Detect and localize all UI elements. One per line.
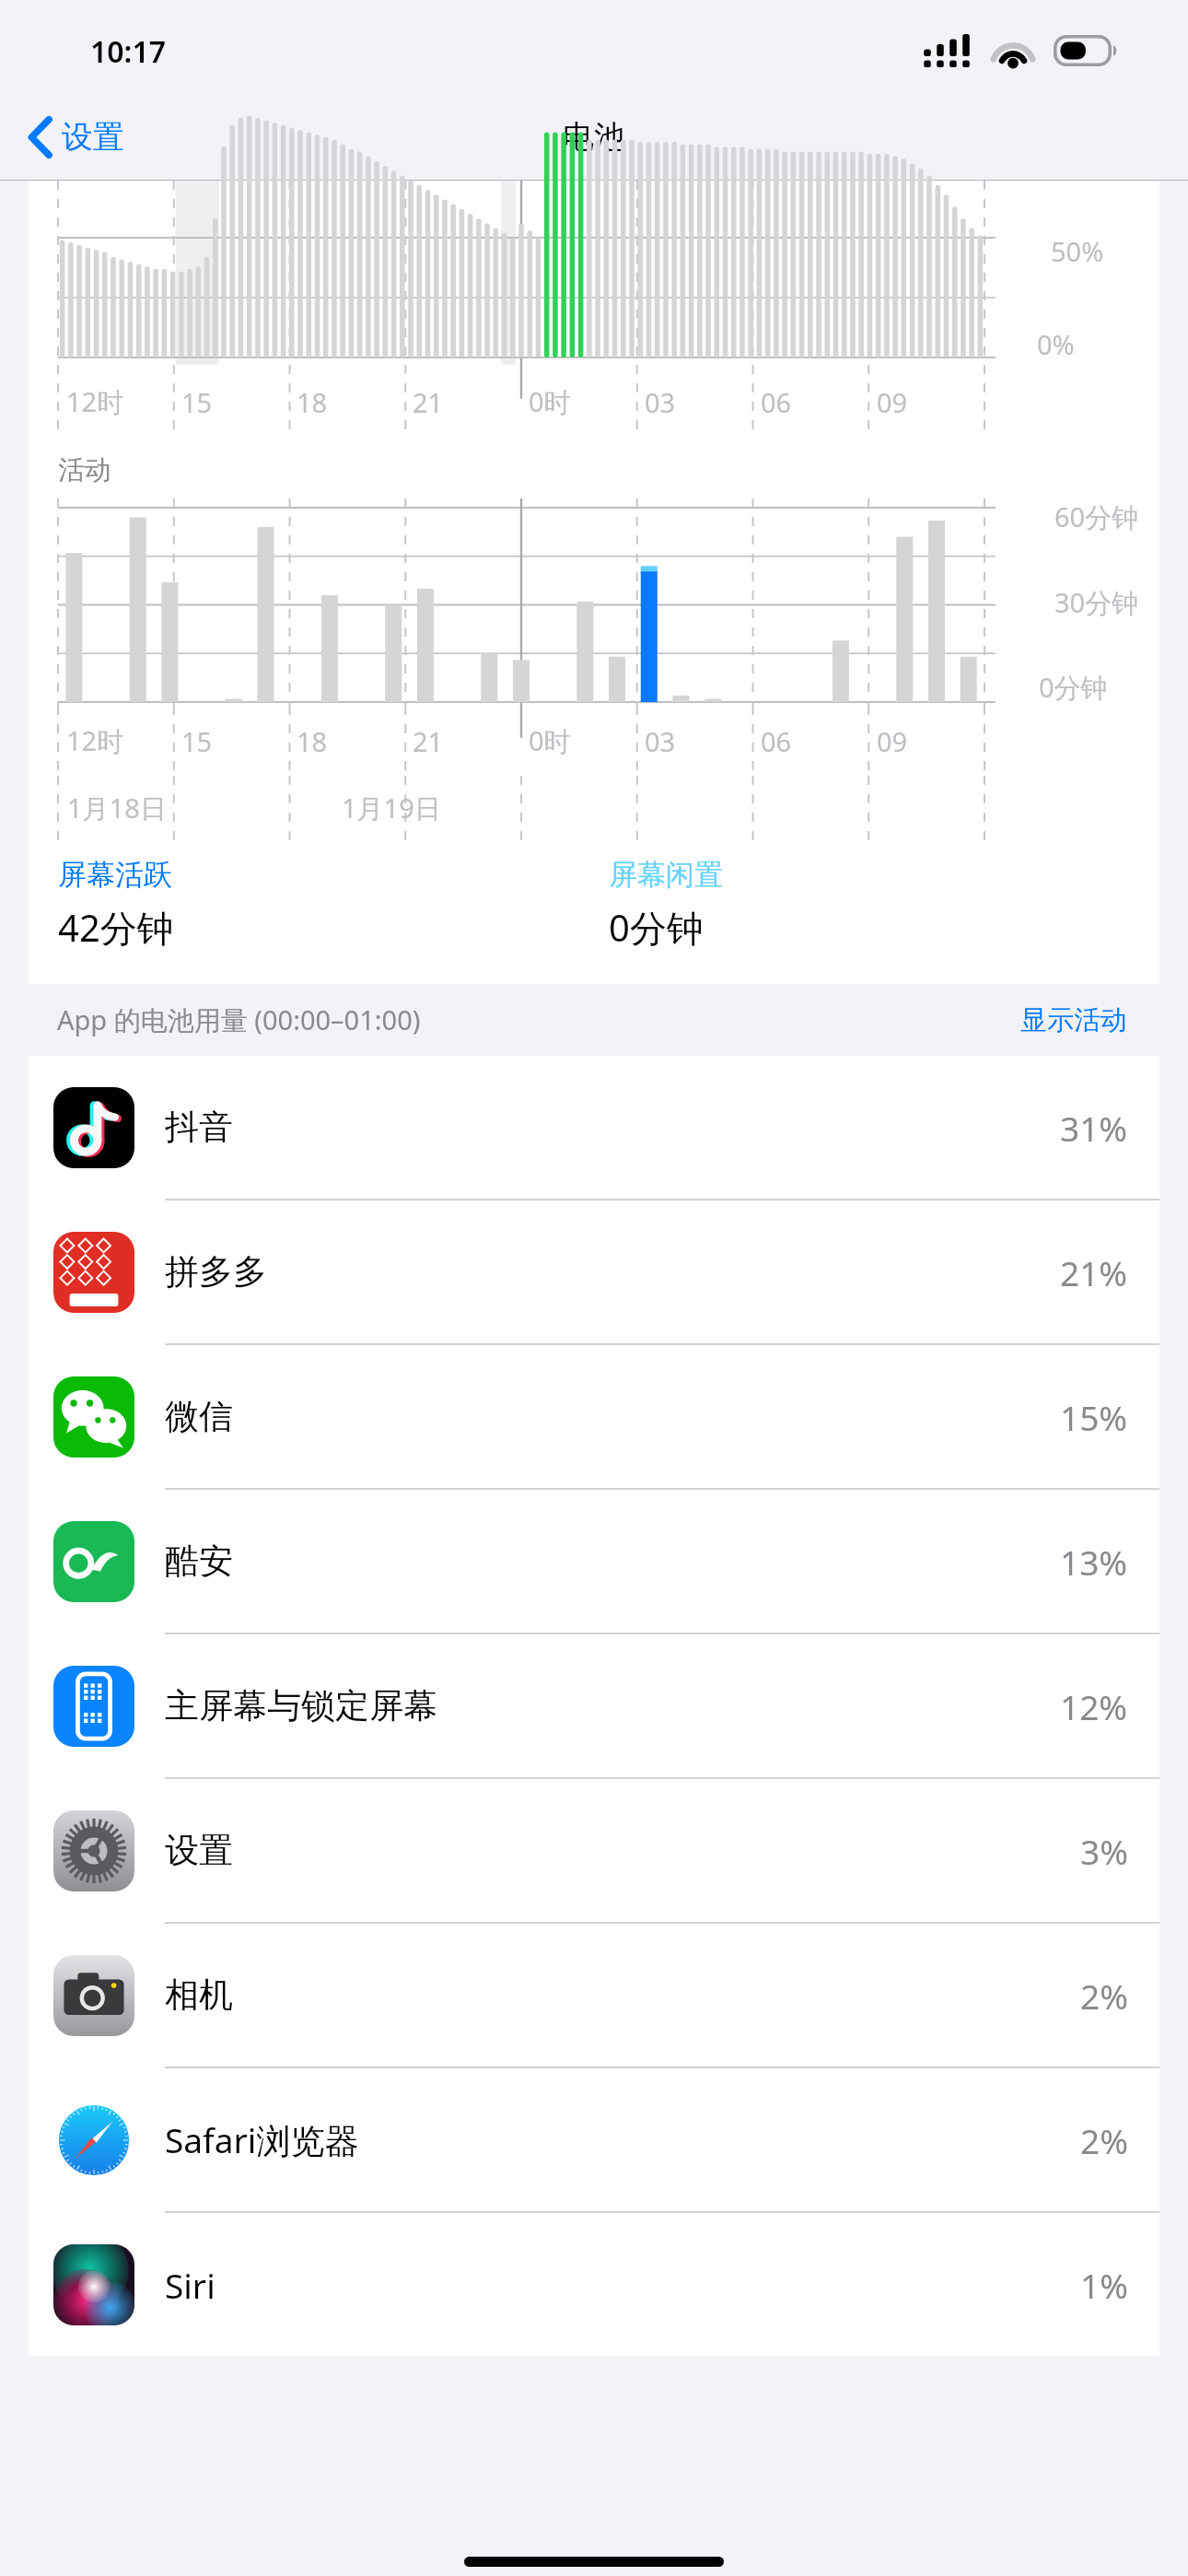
button[interactable]: 主屏幕与锁定屏幕 [29, 1634, 1159, 1779]
staticText: 15 [181, 384, 213, 420]
staticText: 06 [761, 384, 792, 420]
staticText: 显示活动 [1020, 1003, 1127, 1037]
staticText: 15% [1060, 1394, 1128, 1440]
button[interactable]: Safari浏览器 [29, 2068, 1159, 2213]
staticText: 活动 [58, 453, 111, 487]
staticText: 21% [1060, 1249, 1128, 1295]
staticText: 抖音 [165, 1106, 233, 1149]
staticText: 60分钟 [1054, 498, 1139, 535]
button[interactable]: 抖音 [29, 1056, 1159, 1200]
staticText: 屏幕闲置 [609, 857, 723, 893]
staticText: 03 [645, 384, 676, 420]
staticText: 30分钟 [1054, 584, 1139, 621]
staticText: 酷安 [165, 1540, 233, 1583]
staticText: 0时 [529, 383, 571, 420]
staticText: 18 [297, 384, 328, 420]
button[interactable]: 酷安 [29, 1490, 1159, 1634]
staticText: 1月18日 [67, 790, 167, 826]
staticText: 微信 [165, 1395, 233, 1438]
button[interactable]: 设置 [29, 1779, 1159, 1924]
staticText: 18 [297, 723, 328, 759]
staticText: 12% [1060, 1683, 1128, 1729]
staticText: Safari浏览器 [165, 2116, 359, 2163]
staticText: 0% [1037, 326, 1075, 362]
staticText: 09 [877, 384, 908, 420]
button[interactable]: Siri [29, 2213, 1159, 2356]
staticText: 12时 [66, 722, 124, 759]
staticText: 1月19日 [342, 790, 441, 826]
staticText: 1% [1080, 2262, 1128, 2308]
staticText: 50% [1051, 233, 1104, 269]
staticText: 3% [1080, 1828, 1128, 1874]
button[interactable]: 显示活动 [1017, 998, 1131, 1043]
staticText: 拼多多 [165, 1250, 267, 1294]
staticText: 03 [645, 723, 676, 759]
staticText: 21 [413, 384, 444, 420]
button[interactable]: 微信 [29, 1345, 1159, 1490]
staticText: 31% [1060, 1105, 1128, 1151]
staticText: App 的电池用量 (00:00–01:00) [57, 1001, 421, 1038]
staticText: 06 [761, 723, 792, 759]
button[interactable]: 设置 [22, 111, 132, 162]
staticText: 设置 [62, 117, 124, 157]
staticText: 设置 [165, 1829, 233, 1872]
staticText: 0分钟 [1039, 669, 1108, 706]
staticText: 13% [1060, 1539, 1128, 1585]
staticText: 2% [1080, 2117, 1128, 2163]
staticText: Siri [165, 2262, 215, 2308]
button[interactable]: 相机 [29, 1924, 1159, 2068]
staticText: 电池 [563, 117, 625, 157]
button[interactable]: 拼多多 [29, 1200, 1159, 1345]
staticText: 12时 [66, 383, 124, 420]
staticText: 42分钟 [58, 902, 174, 953]
staticText: 21 [413, 723, 444, 759]
staticText: 09 [877, 723, 908, 759]
staticText: 主屏幕与锁定屏幕 [165, 1684, 437, 1727]
staticText: 屏幕活跃 [58, 857, 172, 893]
staticText: 10:17 [90, 31, 167, 72]
staticText: 相机 [165, 1973, 233, 2017]
staticText: 0时 [529, 722, 571, 759]
staticText: 2% [1080, 1973, 1128, 2019]
staticText: 0分钟 [609, 902, 704, 953]
staticText: 15 [181, 723, 213, 759]
